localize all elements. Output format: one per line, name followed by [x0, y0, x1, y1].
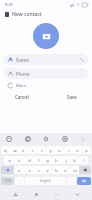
button[interactable]: l [79, 156, 88, 164]
button[interactable]: Home [51, 189, 61, 199]
staticText: d [28, 158, 31, 163]
staticText: q [4, 148, 7, 153]
button[interactable]: y [46, 146, 55, 154]
button[interactable]: w [10, 146, 19, 154]
button[interactable]: a [4, 156, 14, 164]
staticText: z [18, 168, 20, 173]
button[interactable]: d [24, 156, 34, 164]
button[interactable]: h [52, 156, 61, 164]
staticText: j [65, 158, 67, 163]
button[interactable]: Enter [77, 177, 91, 185]
button[interactable]: ?123 [1, 177, 14, 185]
button[interactable]: u [55, 146, 64, 154]
staticText: . [71, 179, 72, 184]
staticText: u [58, 148, 61, 153]
button[interactable]: c [34, 166, 43, 174]
button[interactable]: . [67, 177, 76, 185]
staticText: v [46, 168, 49, 173]
button[interactable]: g [43, 156, 52, 164]
staticText: Phone [16, 71, 30, 77]
button[interactable]: e [19, 146, 28, 154]
button[interactable]: Clipboard [42, 135, 50, 143]
staticText: x [28, 168, 31, 173]
button[interactable]: r [28, 146, 37, 154]
staticText: Name [16, 57, 29, 63]
button[interactable]: v [43, 166, 52, 174]
staticText: p [85, 148, 88, 153]
staticText: m [73, 168, 77, 173]
button[interactable]: Recent apps [72, 189, 82, 199]
button[interactable]: Name [4, 54, 88, 65]
button[interactable]: GIF [24, 135, 32, 143]
button[interactable]: More options [79, 135, 87, 143]
button[interactable]: p [82, 146, 91, 154]
button[interactable]: o [73, 146, 82, 154]
button[interactable]: Settings [61, 135, 69, 143]
button[interactable]: k [70, 156, 79, 164]
button[interactable]: New contact [0, 9, 92, 20]
button[interactable]: j [61, 156, 70, 164]
staticText: , [19, 179, 20, 184]
button[interactable]: Cancel [10, 92, 34, 102]
staticText: h [55, 158, 58, 163]
button[interactable]: x [24, 166, 34, 174]
staticText: ?123 [4, 179, 11, 183]
staticText: b [55, 168, 58, 173]
staticText: More [16, 83, 27, 89]
button[interactable]: Sticker [5, 135, 13, 143]
staticText: r [32, 148, 34, 153]
staticText: f [38, 158, 40, 163]
button[interactable]: English [25, 177, 66, 185]
button[interactable]: More [0, 81, 92, 90]
staticText: Save [67, 94, 77, 100]
staticText: i [68, 148, 70, 153]
staticText: n [64, 168, 67, 173]
button[interactable]: , [15, 177, 24, 185]
button[interactable]: n [61, 166, 70, 174]
button[interactable]: Save [62, 92, 82, 102]
button[interactable]: Phone [4, 68, 88, 79]
staticText: c [38, 168, 40, 173]
staticText: e [22, 148, 25, 153]
staticText: New contact [12, 11, 42, 18]
button[interactable]: b [52, 166, 61, 174]
button[interactable]: q [1, 146, 10, 154]
staticText: a [8, 158, 11, 163]
staticText: l [83, 158, 85, 163]
button[interactable]: s [14, 156, 24, 164]
button[interactable]: t [37, 146, 46, 154]
staticText: o [76, 148, 79, 153]
button[interactable]: Add photo [33, 23, 59, 49]
staticText: k [73, 158, 76, 163]
staticText: s [18, 158, 20, 163]
button[interactable]: Shift [1, 166, 14, 174]
staticText: Cancel [15, 94, 29, 100]
button[interactable]: i [64, 146, 73, 154]
button[interactable]: f [34, 156, 43, 164]
button[interactable]: Back [31, 189, 41, 199]
staticText: y [49, 148, 52, 153]
staticText: g [46, 158, 49, 163]
staticText: English [40, 179, 51, 183]
button[interactable]: Backspace [79, 166, 91, 174]
staticText: t [41, 148, 43, 153]
staticText: w [13, 148, 17, 153]
button[interactable]: z [14, 166, 24, 174]
staticText: 9:41 [5, 2, 13, 7]
button[interactable]: Hide keyboard [10, 189, 20, 199]
button[interactable]: m [70, 166, 79, 174]
